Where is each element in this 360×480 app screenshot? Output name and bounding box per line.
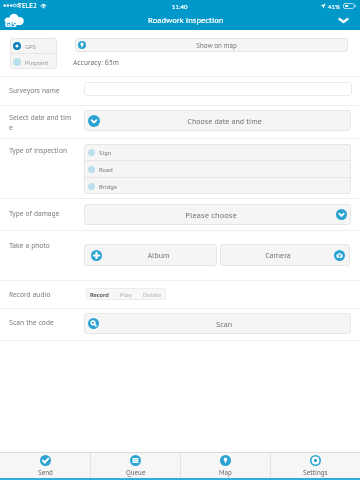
staticText: GIS [4,19,16,29]
staticText: TELE2 [18,1,37,10]
button[interactable]: Sign [88,144,351,160]
staticText: Map [219,468,232,477]
staticText: Accuracy: 65m [73,57,119,67]
staticText: Type of damage [9,208,60,218]
button[interactable]: GPS [13,38,57,53]
staticText: Delete [143,290,162,298]
staticText: Choose date and time [100,116,349,126]
staticText: Bridge [99,182,118,190]
button[interactable]: Pinpoint [13,54,57,69]
staticText: Queue [126,468,146,477]
button[interactable]: Camera [220,244,350,266]
button[interactable]: Settings [271,453,360,478]
staticText: Record [90,290,109,298]
button[interactable]: Bridge [88,178,351,194]
button[interactable] [84,82,352,96]
staticText: Settings [303,468,328,477]
staticText: Roadwork Inspection [148,14,224,25]
button[interactable]: Send [0,453,90,478]
button[interactable]: Show on map [75,38,348,52]
staticText: Pinpoint [25,58,49,66]
button[interactable]: Map [181,453,270,478]
staticText: Play [120,290,132,298]
staticText: Scan the code [9,317,54,327]
button[interactable]: Please choose [84,204,351,225]
staticText: Please choose [86,209,336,220]
button[interactable]: Choose date and time [84,110,351,131]
button[interactable]: Album [84,244,217,266]
staticText: Scan [99,319,349,329]
staticText: GIS [5,19,17,29]
staticText: Record audio [9,289,51,299]
button[interactable]: Expand menu [332,11,354,30]
button[interactable]: Delete [138,288,166,300]
staticText: 11:40 [172,2,188,10]
button[interactable]: Scan [84,313,351,334]
staticText: Road [99,165,113,173]
staticText: Camera [222,250,334,260]
button[interactable]: Road [88,161,351,177]
staticText: GIS [5,19,17,29]
staticText: Surveyors name [9,85,60,95]
staticText: GPS [25,42,37,50]
staticText: Send [38,468,53,477]
button[interactable]: Queue [91,453,180,478]
staticText: Show on map [86,41,347,50]
button[interactable]: Record [86,288,113,300]
staticText: Select date and tim e [9,112,72,132]
staticText: GIS [5,20,17,30]
staticText: Type of inspection [9,145,68,155]
staticText: Sign [99,148,112,156]
staticText: 41% [328,2,341,10]
button[interactable]: Play [113,288,138,300]
staticText: GIS [4,20,16,30]
staticText: Album [102,250,215,260]
staticText: Take a photo [9,240,50,250]
